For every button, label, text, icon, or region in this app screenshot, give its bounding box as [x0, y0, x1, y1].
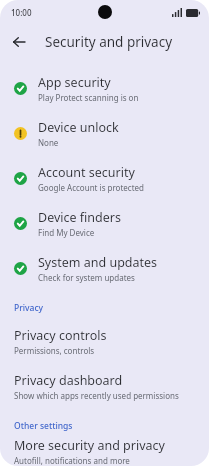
button[interactable]: Privacy dashboard [0, 364, 209, 409]
button[interactable]: App security [0, 66, 209, 111]
staticText: Autofill, notifications and more [14, 455, 130, 466]
staticText: App security [38, 74, 111, 91]
staticText: Show which apps recently used permission… [14, 390, 179, 401]
button[interactable]: Privacy controls [0, 319, 209, 364]
staticText: 10:00 [11, 7, 32, 18]
staticText: Privacy [14, 302, 44, 314]
button[interactable]: Account security [0, 156, 209, 201]
button[interactable]: System and updates [0, 246, 209, 291]
staticText: More security and privacy [14, 437, 165, 454]
staticText: System and updates [38, 254, 158, 271]
staticText: Privacy dashboard [14, 372, 123, 389]
button[interactable]: Device unlock [0, 111, 209, 156]
staticText: Permissions, controls [14, 345, 95, 356]
button[interactable]: Back [5, 28, 33, 56]
staticText: None [38, 137, 59, 148]
button[interactable]: More security and privacy [0, 437, 209, 466]
staticText: Device finders [38, 209, 121, 226]
staticText: Play Protect scanning is on [38, 92, 139, 103]
staticText: Device unlock [38, 119, 119, 136]
staticText: Check for system updates [38, 272, 135, 283]
staticText: Google Account is protected [38, 182, 145, 193]
staticText: Other settings [14, 420, 73, 432]
staticText: Privacy controls [14, 327, 107, 344]
staticText: Account security [38, 164, 135, 181]
button[interactable]: Device finders [0, 201, 209, 246]
staticText: Find My Device [38, 227, 95, 238]
staticText: Security and privacy [45, 33, 173, 51]
